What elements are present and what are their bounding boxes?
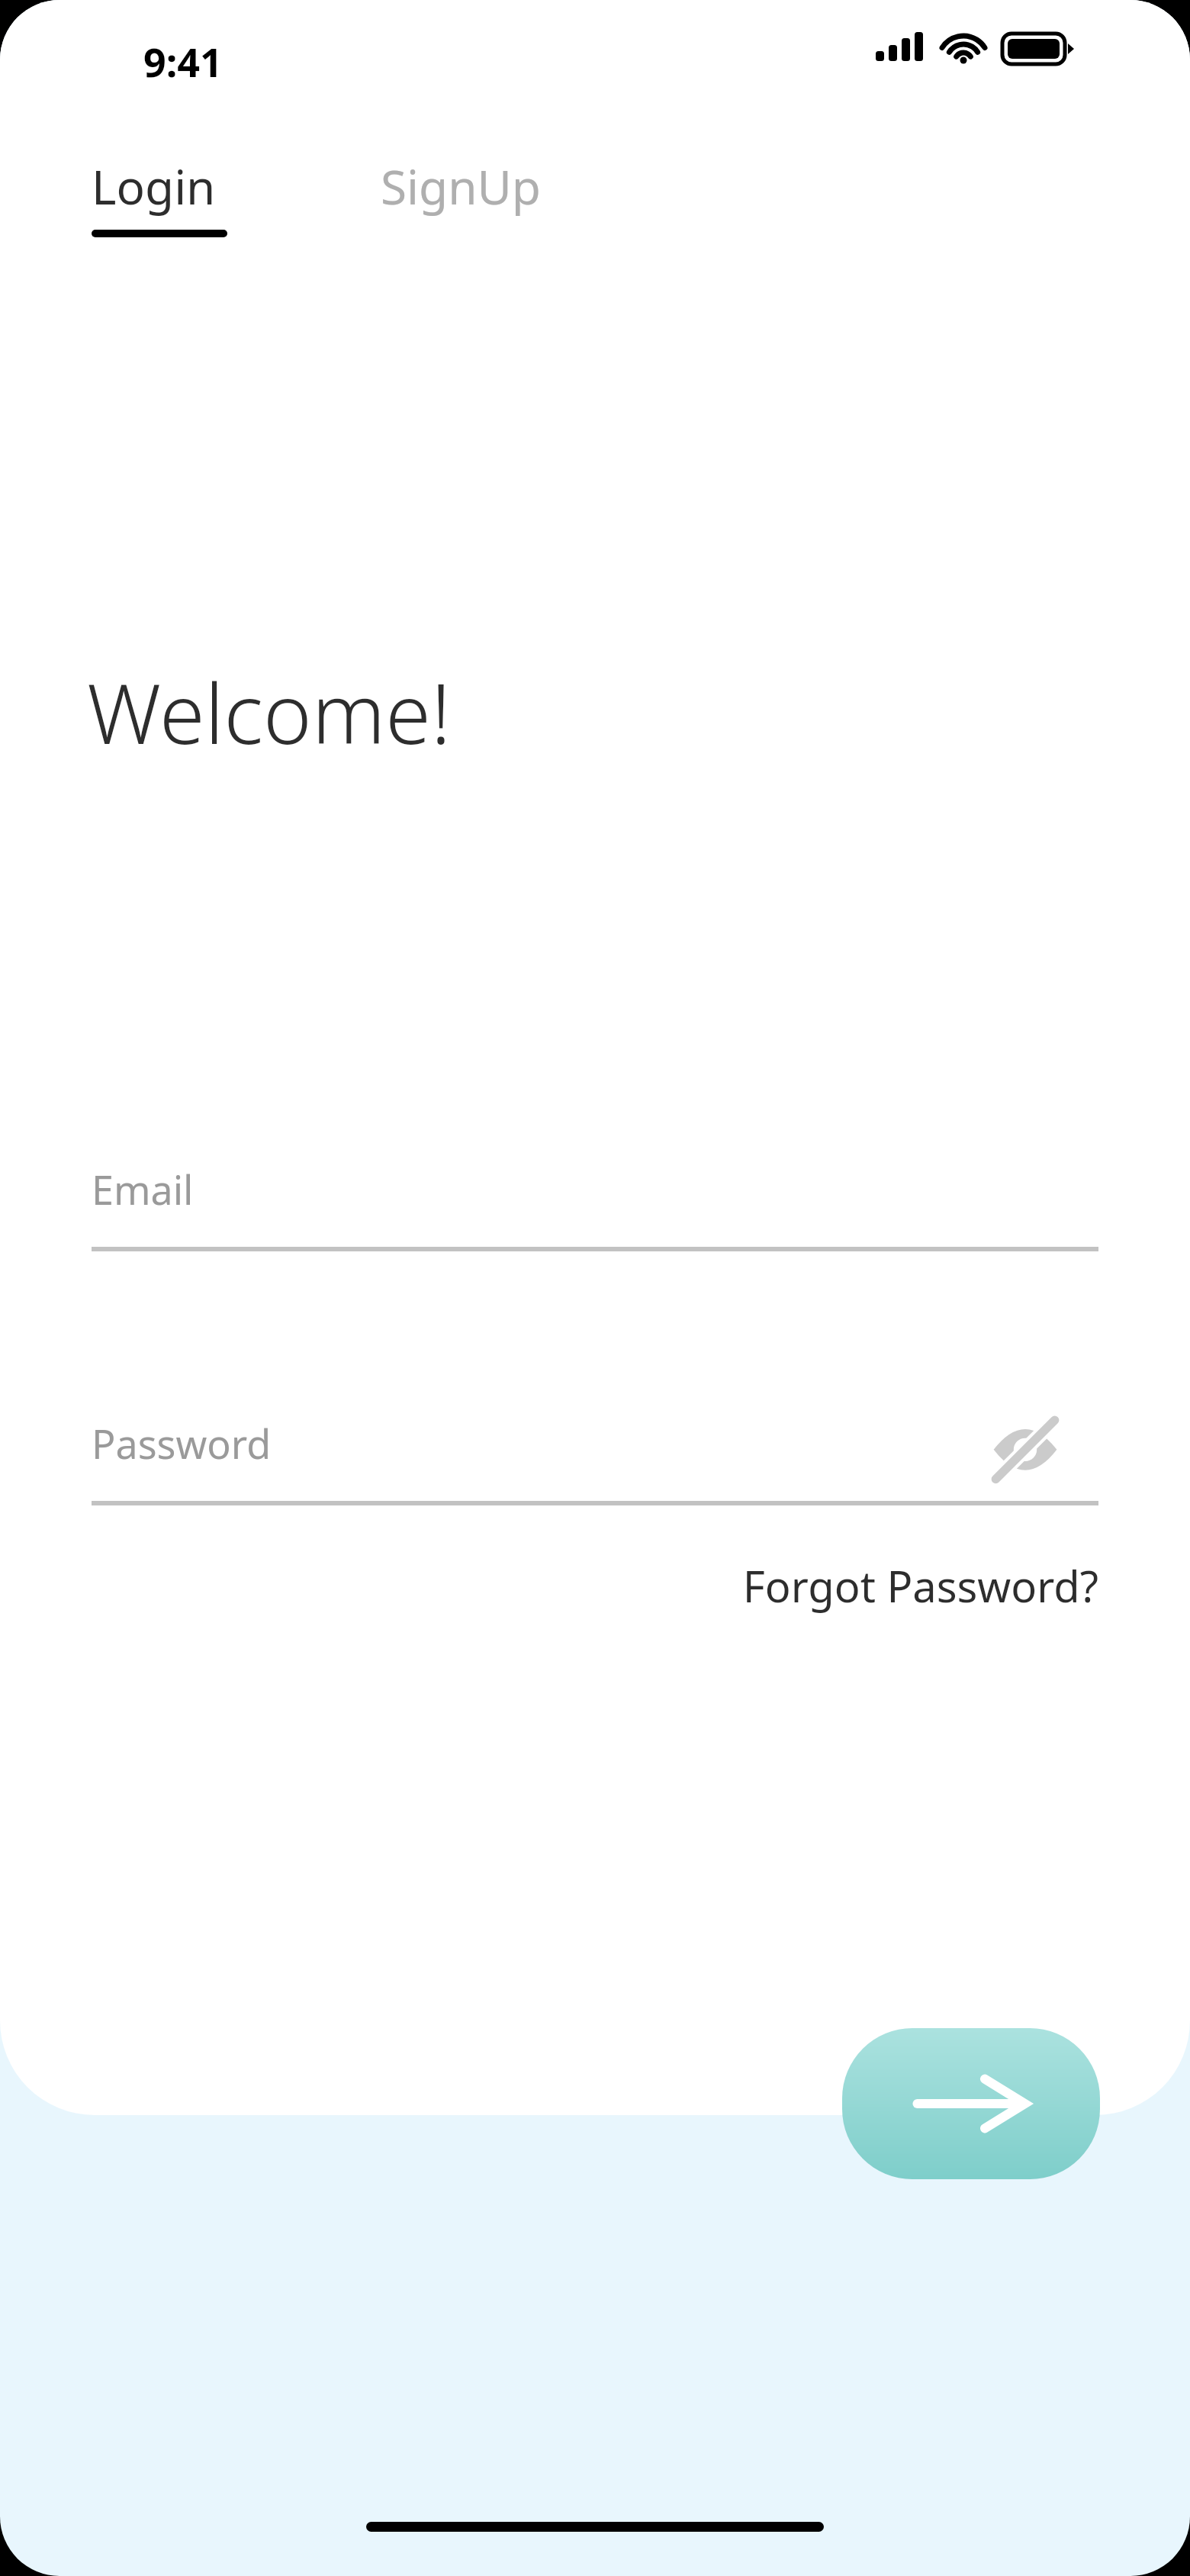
staticText: Password [92, 1416, 272, 1470]
button[interactable]: Password [92, 1395, 1098, 1505]
staticText: SignUp [381, 154, 541, 218]
button[interactable]: Forgot Password? [687, 1549, 1098, 1622]
staticText: Forgot Password? [687, 1557, 1098, 1615]
button[interactable]: Continue [842, 2028, 1100, 2179]
staticText: Welcome! [87, 656, 452, 768]
button[interactable]: Login [90, 150, 217, 223]
staticText: Email [92, 1162, 194, 1216]
button[interactable]: Show password [986, 1409, 1065, 1488]
button[interactable]: SignUp [379, 150, 542, 223]
button[interactable]: Email [92, 1141, 1098, 1251]
staticText: 9:41 [143, 34, 223, 89]
staticText: Login [92, 154, 216, 218]
